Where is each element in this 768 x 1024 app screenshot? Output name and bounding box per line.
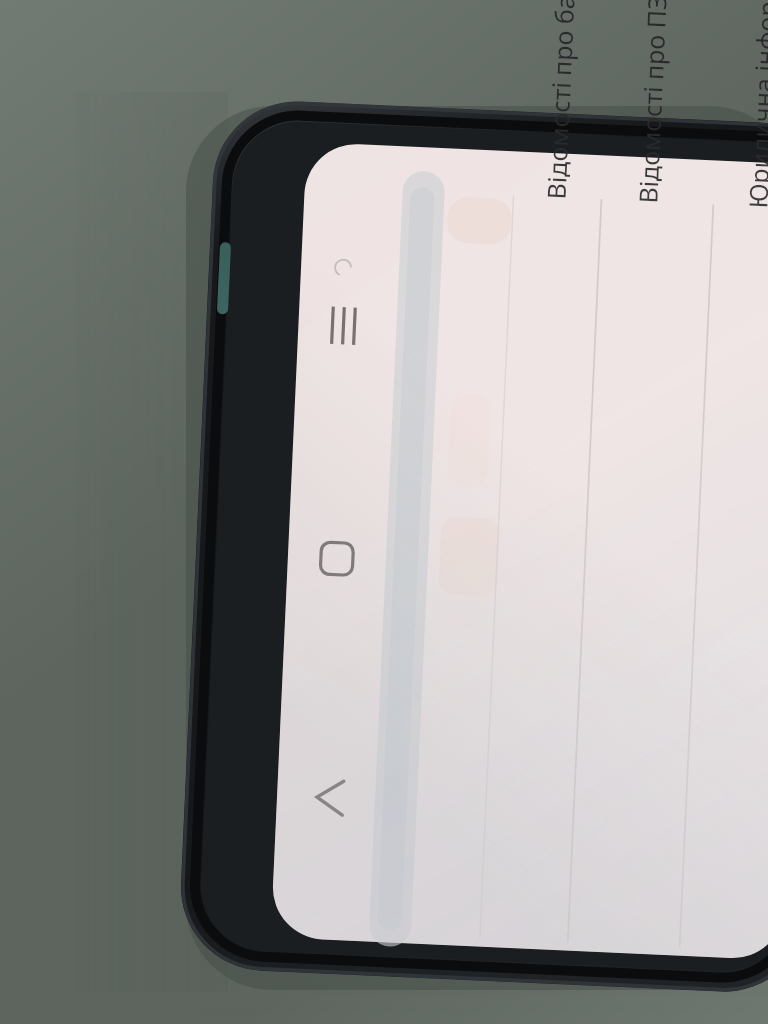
button[interactable]: Юридична інформація <box>608 152 768 452</box>
button[interactable]: Recents <box>298 288 374 380</box>
button[interactable]: Back <box>300 764 380 852</box>
button[interactable]: Home <box>298 524 376 612</box>
button[interactable]: Відомості про ПЗ <box>498 152 608 672</box>
button[interactable]: Відомості про батарею <box>390 152 498 772</box>
